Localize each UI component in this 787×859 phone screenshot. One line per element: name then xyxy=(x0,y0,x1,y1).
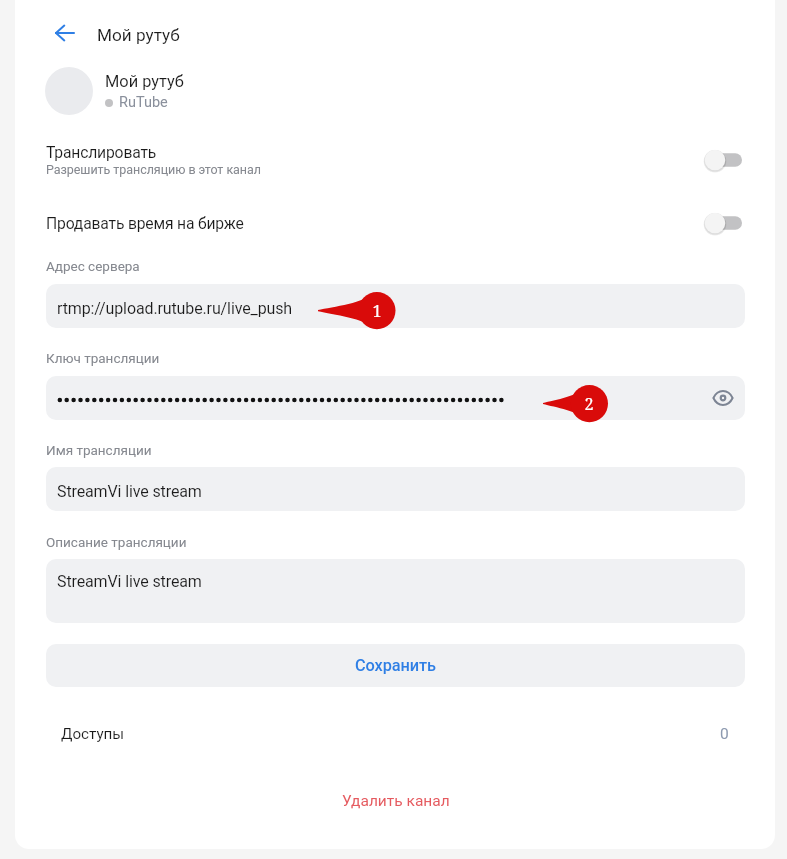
staticText: StreamVi live stream xyxy=(57,572,202,591)
staticText: Имя трансляции xyxy=(46,442,152,458)
button[interactable]: Доступы xyxy=(61,712,729,756)
staticText: rtmp://upload.rutube.ru/live_push xyxy=(57,299,293,318)
staticText: Сохранить xyxy=(355,656,436,675)
staticText: Продавать время на бирже xyxy=(46,214,707,232)
staticText: Разрешить трансляцию в этот канал xyxy=(46,162,261,177)
staticText: Транслировать xyxy=(46,143,157,161)
button[interactable]: Show stream key xyxy=(46,376,745,420)
staticText: Удалить канал xyxy=(342,792,450,810)
staticText: 1 xyxy=(372,300,382,322)
staticText: Описание трансляции xyxy=(46,534,187,550)
button[interactable]: Удалить канал xyxy=(46,784,745,818)
button[interactable]: Мой рутуб xyxy=(45,62,345,120)
button[interactable]: StreamVi live stream xyxy=(46,559,745,623)
staticText: Мой рутуб xyxy=(105,72,184,91)
staticText: Ключ трансляции xyxy=(46,350,160,366)
staticText: 0 xyxy=(720,725,729,743)
button[interactable]: Продавать время на бирже xyxy=(46,204,745,241)
button[interactable]: rtmp://upload.rutube.ru/live_push xyxy=(46,284,745,328)
button[interactable]: Back xyxy=(45,13,85,53)
staticText: Адрес сервера xyxy=(46,258,140,274)
staticText: 2 xyxy=(584,393,594,415)
staticText: Мой рутуб xyxy=(97,25,180,45)
button[interactable]: Транслировать xyxy=(46,141,745,179)
button[interactable]: Сохранить xyxy=(46,644,745,687)
staticText: Доступы xyxy=(61,725,720,743)
button[interactable]: StreamVi live stream xyxy=(46,467,745,511)
staticText: StreamVi live stream xyxy=(57,482,202,501)
staticText: RuTube xyxy=(119,94,168,111)
button[interactable]: Show stream key xyxy=(705,380,741,416)
